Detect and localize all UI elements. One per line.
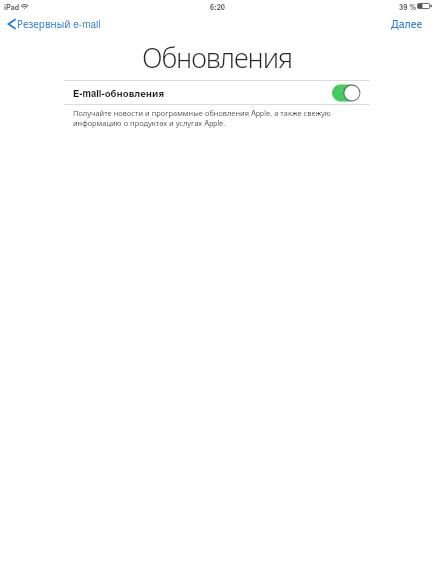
- staticText: Резервный e-mail: [17, 17, 101, 31]
- button[interactable]: E-mail-обновления: [64, 81, 370, 104]
- button[interactable]: Далее: [391, 17, 423, 31]
- staticText: 6:20: [210, 2, 226, 13]
- staticText: 39 %: [399, 2, 417, 13]
- staticText: Обновления: [142, 39, 292, 76]
- staticText: Далее: [391, 17, 423, 31]
- staticText: E-mail-обновления: [73, 86, 165, 100]
- button[interactable]: Резервный e-mail: [5, 17, 101, 31]
- button[interactable]: E-mail updates on: [332, 84, 361, 102]
- staticText: iPad: [4, 2, 20, 12]
- staticText: Получайте новости и программные обновлен…: [73, 107, 343, 128]
